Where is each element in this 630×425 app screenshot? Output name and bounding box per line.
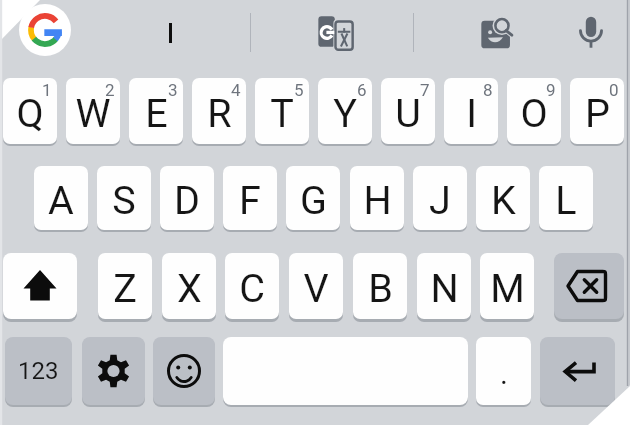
button[interactable]: M xyxy=(480,253,534,319)
button[interactable]: Backspace xyxy=(554,253,624,319)
staticText: 1 xyxy=(42,80,52,100)
staticText: A xyxy=(48,177,74,223)
staticText: V xyxy=(303,265,329,311)
staticText: 5 xyxy=(294,80,304,100)
button[interactable]: V xyxy=(289,253,343,319)
staticText: X xyxy=(177,265,202,311)
staticText: D xyxy=(174,177,200,223)
button[interactable]: O xyxy=(507,78,561,144)
button[interactable]: F xyxy=(223,166,277,230)
button[interactable]: Enter xyxy=(540,337,615,405)
button[interactable]: U xyxy=(381,78,435,144)
staticText: T xyxy=(270,90,294,136)
staticText: F xyxy=(239,177,261,223)
staticText: Q xyxy=(16,90,44,136)
button[interactable]: E xyxy=(129,78,183,144)
staticText: 3 xyxy=(168,80,178,100)
staticText: W xyxy=(75,90,111,136)
staticText: U xyxy=(395,90,421,136)
staticText: 7 xyxy=(420,80,430,100)
button[interactable]: B xyxy=(353,253,407,319)
button[interactable]: C xyxy=(225,253,279,319)
button[interactable]: Settings xyxy=(82,337,145,405)
staticText: Y xyxy=(333,90,357,136)
button[interactable]: J xyxy=(413,166,467,230)
staticText: 6 xyxy=(357,80,367,100)
button[interactable]: S xyxy=(97,166,151,230)
staticText: O xyxy=(520,90,548,136)
staticText: 8 xyxy=(483,80,493,100)
button[interactable]: L xyxy=(539,166,593,230)
button[interactable]: Image search xyxy=(481,17,513,49)
button[interactable]: W xyxy=(66,78,120,144)
staticText: J xyxy=(429,177,451,223)
staticText: . xyxy=(500,356,508,391)
button[interactable]: I xyxy=(444,78,498,144)
staticText: S xyxy=(112,177,136,223)
button[interactable]: 123 xyxy=(5,337,72,405)
staticText: 4 xyxy=(231,80,241,100)
button[interactable]: A xyxy=(34,166,88,230)
staticText: H xyxy=(363,177,392,223)
staticText: E xyxy=(145,90,168,136)
button[interactable]: K xyxy=(476,166,530,230)
button[interactable]: D xyxy=(160,166,214,230)
button[interactable]: G xyxy=(286,166,340,230)
staticText: 9 xyxy=(546,80,556,100)
staticText: G xyxy=(300,177,327,223)
button[interactable]: H xyxy=(350,166,404,230)
button[interactable]: T xyxy=(255,78,309,144)
staticText: B xyxy=(368,265,393,311)
staticText: Z xyxy=(113,265,137,311)
staticText: P xyxy=(585,90,610,136)
staticText: 0 xyxy=(609,80,619,100)
staticText: K xyxy=(491,177,516,223)
button[interactable]: Emoji xyxy=(153,337,215,405)
button[interactable]: . xyxy=(476,337,531,405)
button[interactable]: Y xyxy=(318,78,372,144)
staticText: 123 xyxy=(18,357,59,385)
button[interactable]: Voice input xyxy=(574,13,610,49)
button[interactable]: Shift xyxy=(3,253,77,319)
button[interactable]: R xyxy=(192,78,246,144)
button[interactable]: Z xyxy=(98,253,152,319)
button[interactable]: P xyxy=(570,78,624,144)
button[interactable]: X xyxy=(162,253,216,319)
button[interactable]: Space xyxy=(223,337,468,405)
staticText: L xyxy=(555,177,577,223)
button[interactable]: Q xyxy=(3,78,57,144)
button[interactable]: N xyxy=(417,253,471,319)
staticText: R xyxy=(207,90,232,136)
button[interactable]: Google xyxy=(19,4,71,56)
button[interactable]: Translate xyxy=(318,16,353,51)
staticText: C xyxy=(239,265,265,311)
staticText: 2 xyxy=(105,80,115,100)
staticText: I xyxy=(466,90,477,136)
staticText: N xyxy=(430,265,459,311)
staticText: M xyxy=(490,265,525,311)
